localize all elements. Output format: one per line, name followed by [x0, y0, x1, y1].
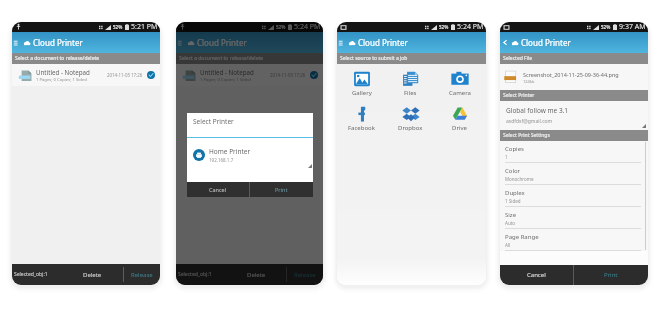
staticText: 192.168.1.7 — [209, 157, 234, 163]
staticText: Auto — [505, 220, 516, 226]
staticText: asdfdsf@gmail.com — [506, 118, 553, 125]
button[interactable]: Global follow me 3.1 — [500, 101, 648, 130]
button[interactable]: Cancel — [187, 182, 249, 197]
staticText: Select a document to release/delete — [179, 55, 264, 62]
button[interactable]: Release — [124, 264, 160, 285]
staticText: Dropbox — [398, 124, 423, 132]
staticText: Duplex — [505, 189, 525, 197]
staticText: 52% — [276, 24, 286, 30]
staticText: 1 — [505, 154, 508, 160]
staticText: Page Range — [505, 233, 539, 241]
staticText: Cloud Printer — [33, 37, 83, 48]
staticText: 52% — [601, 24, 611, 30]
button[interactable]: Size — [500, 207, 648, 229]
staticText: Select source to submit a job — [340, 55, 408, 62]
staticText: Size — [505, 211, 517, 219]
staticText: Selected File — [503, 55, 533, 62]
staticText: Camera — [449, 89, 471, 97]
staticText: 1 Pages; 0 Copies; 1 Sided — [200, 77, 251, 83]
button[interactable]: Cancel — [500, 265, 573, 285]
staticText: Selected_obj:1 — [14, 271, 62, 278]
staticText: Monochrome — [505, 176, 534, 182]
button[interactable]: Delete — [226, 264, 286, 285]
staticText: Drive — [452, 124, 467, 132]
button[interactable]: Facebook — [337, 104, 386, 133]
staticText: 52% — [439, 24, 449, 30]
staticText: Cloud Printer — [197, 37, 247, 48]
staticText: 5:24 PM — [294, 22, 321, 32]
button[interactable]: Color — [500, 163, 648, 185]
staticText: Copies — [505, 145, 524, 153]
staticText: Cancel — [527, 271, 546, 279]
button[interactable]: Drive — [435, 104, 484, 133]
button[interactable]: Menu — [176, 38, 185, 47]
staticText: 52% — [113, 24, 123, 30]
staticText: Color — [505, 167, 521, 175]
staticText: 5:24 PM — [457, 22, 484, 32]
button[interactable]: Menu — [337, 38, 346, 47]
button[interactable]: Copies — [500, 141, 648, 163]
staticText: Cancel — [209, 186, 227, 193]
button[interactable]: Print — [250, 182, 313, 197]
staticText: 2014-11-05 17:26 — [270, 72, 306, 78]
staticText: Screenshot_2014-11-25-09-36-44.png — [523, 71, 619, 78]
button[interactable]: Camera — [435, 69, 484, 98]
button[interactable]: Back — [500, 38, 509, 47]
button[interactable]: Gallery — [337, 69, 386, 98]
staticText: Release — [294, 271, 316, 279]
staticText: 5:21 PM — [131, 22, 158, 32]
staticText: Facebook — [348, 124, 375, 132]
staticText: Untitled - Notepad — [200, 68, 254, 76]
staticText: Print — [275, 186, 288, 193]
button[interactable]: Page Range — [500, 229, 648, 251]
button[interactable]: Print — [574, 265, 648, 285]
button[interactable]: Untitled - Notepad — [176, 64, 323, 86]
staticText: Delete — [83, 271, 102, 279]
button[interactable]: Duplex — [500, 185, 648, 207]
staticText: Selected_obj:1 — [178, 271, 226, 278]
staticText: 1 Pages; 0 Copies; 1 Sided — [36, 77, 87, 83]
button[interactable]: Dropbox — [386, 104, 435, 133]
staticText: Untitled - Notepad — [36, 68, 90, 76]
staticText: 9:37 AM — [619, 22, 646, 32]
staticText: Select Printer — [193, 117, 234, 126]
staticText: Select Print Settings — [503, 132, 550, 139]
staticText: Print — [604, 271, 618, 279]
staticText: All — [505, 242, 511, 248]
staticText: Cloud Printer — [358, 37, 408, 48]
button[interactable]: Files — [386, 69, 435, 98]
staticText: Cloud Printer — [521, 37, 571, 48]
button[interactable]: Untitled - Notepad — [12, 64, 160, 86]
staticText: 124kb — [523, 79, 535, 84]
button[interactable]: Screenshot_2014-11-25-09-36-44.png — [500, 64, 648, 90]
button[interactable]: Menu — [12, 38, 21, 47]
staticText: 2014-11-05 17:26 — [107, 72, 143, 78]
staticText: Home Printer — [209, 147, 251, 156]
staticText: Select a document to release/delete — [15, 55, 100, 62]
button[interactable]: Release — [287, 264, 323, 285]
button[interactable]: Home Printer — [187, 147, 313, 163]
staticText: Delete — [247, 271, 266, 279]
staticText: Global follow me 3.1 — [506, 106, 569, 115]
staticText: Gallery — [352, 89, 372, 97]
staticText: Release — [131, 271, 153, 279]
staticText: Files — [404, 89, 417, 97]
button[interactable]: Delete — [62, 264, 123, 285]
staticText: Select Printer — [503, 92, 535, 99]
staticText: 1 Sided — [505, 198, 521, 204]
